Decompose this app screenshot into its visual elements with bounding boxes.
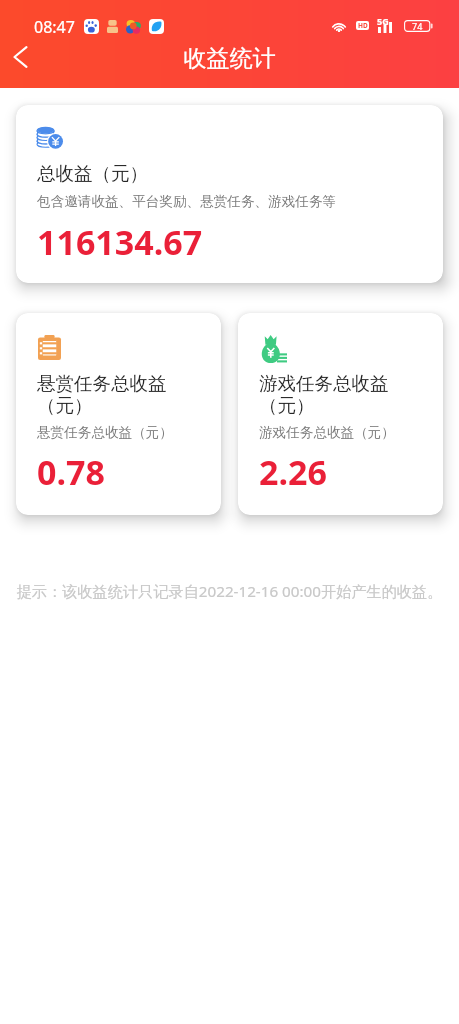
staticText: HD <box>358 21 368 30</box>
button[interactable]: 游戏任务总收益（元） <box>238 313 443 515</box>
staticText: 悬赏任务总收益（元） <box>37 372 197 417</box>
staticText: 0.78 <box>37 449 105 495</box>
button[interactable]: 悬赏任务总收益（元） <box>16 313 221 515</box>
staticText: 5G <box>377 15 389 27</box>
staticText: 游戏任务总收益（元） <box>259 372 419 417</box>
staticText: 提示：该收益统计只记录自2022-12-16 00:00开始产生的收益。 <box>0 581 459 602</box>
staticText: 74 <box>412 20 423 32</box>
staticText: 116134.67 <box>37 219 203 265</box>
staticText: 包含邀请收益、平台奖励、悬赏任务、游戏任务等 <box>37 193 337 210</box>
button[interactable]: 总收益（元） <box>16 105 443 283</box>
staticText: 总收益（元） <box>37 162 148 185</box>
staticText: 收益统计 <box>0 44 459 73</box>
staticText: 游戏任务总收益（元） <box>259 424 395 441</box>
button[interactable]: Back <box>0 33 40 81</box>
staticText: 08:47 <box>34 16 75 38</box>
staticText: 2.26 <box>259 449 327 495</box>
staticText: 悬赏任务总收益（元） <box>37 424 173 441</box>
